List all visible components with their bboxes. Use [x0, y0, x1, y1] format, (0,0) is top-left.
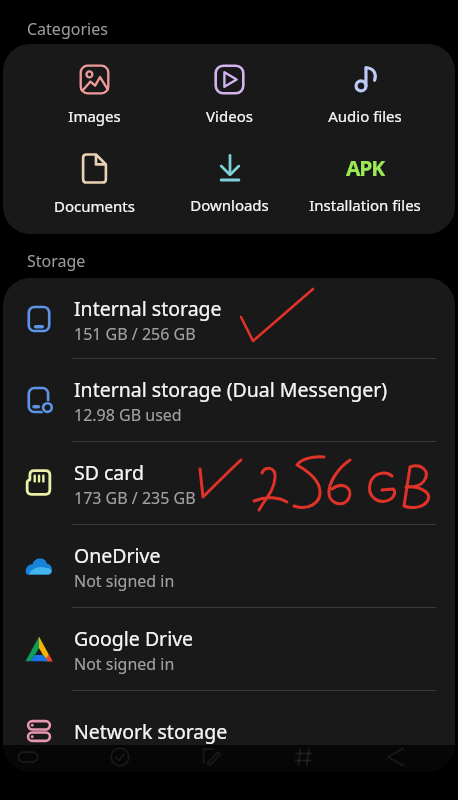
button[interactable]: Recent files: [6, 745, 50, 769]
staticText: SD card: [74, 459, 144, 486]
button[interactable]: Tags: [282, 745, 326, 769]
staticText: Categories: [27, 18, 108, 40]
staticText: APK: [346, 154, 384, 183]
button[interactable]: Audio files: [297, 50, 432, 139]
button[interactable]: Internal storage (Dual Messenger): [3, 359, 455, 442]
button[interactable]: Videos: [162, 50, 297, 139]
button[interactable]: Documents: [26, 139, 162, 228]
button[interactable]: Downloads: [162, 139, 297, 228]
staticText: Google Drive: [74, 625, 194, 652]
staticText: Images: [68, 106, 121, 126]
button[interactable]: Edit: [190, 745, 234, 769]
staticText: 151 GB / 256 GB: [74, 323, 196, 345]
staticText: Videos: [206, 106, 253, 126]
button[interactable]: Select: [98, 745, 142, 769]
staticText: Not signed in: [74, 653, 175, 675]
staticText: Network storage: [74, 718, 228, 745]
staticText: Documents: [54, 196, 135, 216]
staticText: Internal storage (Dual Messenger): [74, 376, 388, 403]
button[interactable]: Internal storage: [3, 281, 455, 359]
staticText: Not signed in: [74, 570, 175, 592]
button[interactable]: SD card: [3, 442, 455, 525]
staticText: Downloads: [190, 195, 269, 215]
staticText: 12.98 GB used: [74, 404, 182, 426]
staticText: 173 GB / 235 GB: [74, 487, 196, 509]
button[interactable]: Network storage: [3, 691, 455, 772]
staticText: OneDrive: [74, 542, 161, 569]
staticText: Installation files: [309, 195, 421, 215]
button[interactable]: Google Drive: [3, 608, 455, 691]
button[interactable]: APK: [297, 139, 432, 228]
button[interactable]: Images: [26, 50, 162, 139]
staticText: Internal storage: [74, 295, 222, 322]
button[interactable]: Share: [374, 745, 418, 769]
button[interactable]: OneDrive: [3, 525, 455, 608]
staticText: Audio files: [328, 106, 402, 126]
staticText: Storage: [27, 250, 86, 272]
